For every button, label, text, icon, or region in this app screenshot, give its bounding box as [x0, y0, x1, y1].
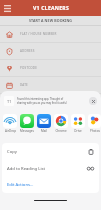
button[interactable]: FLAT / HOUSE NUMBER [0, 26, 101, 42]
button[interactable]: Edit Actions... [2, 177, 99, 193]
staticText: V1 CLEANERS [33, 5, 69, 12]
button[interactable]: Chrome [54, 114, 68, 133]
staticText: POSTCODE [20, 66, 38, 70]
staticText: Mail [41, 129, 47, 133]
staticText: Chrome [55, 129, 67, 133]
staticText: Found this interesting app. Thought of [17, 97, 64, 100]
button[interactable]: AirDrop [3, 114, 17, 133]
staticText: Photos [90, 129, 100, 133]
button[interactable]: Drive [71, 114, 85, 133]
button[interactable]: Mail [37, 114, 51, 133]
staticText: AirDrop [5, 129, 16, 133]
button[interactable]: Photos [88, 114, 101, 133]
staticText: DATE [20, 83, 28, 87]
staticText: T1 [7, 99, 12, 104]
staticText: ADDRESS [20, 49, 35, 53]
staticText: sharing with you as you may find it usef… [17, 101, 67, 104]
staticText: Add to Reading List [7, 166, 46, 172]
button[interactable]: Add to Reading List [2, 160, 99, 177]
staticText: FLAT / HOUSE NUMBER [20, 32, 57, 36]
staticText: Edit Actions... [7, 182, 34, 188]
staticText: Drive [74, 129, 82, 133]
button[interactable]: DATE [0, 77, 101, 93]
button[interactable]: Close [89, 97, 97, 105]
button[interactable]: ADDRESS [0, 43, 101, 59]
button[interactable]: Copy [2, 143, 99, 160]
staticText: Messages [20, 129, 34, 133]
button[interactable]: POSTCODE [0, 60, 101, 76]
button[interactable]: Messages [20, 114, 34, 133]
staticText: Copy [7, 149, 17, 155]
button[interactable]: Menu [2, 3, 12, 13]
staticText: START A NEW BOOKING [29, 18, 73, 23]
